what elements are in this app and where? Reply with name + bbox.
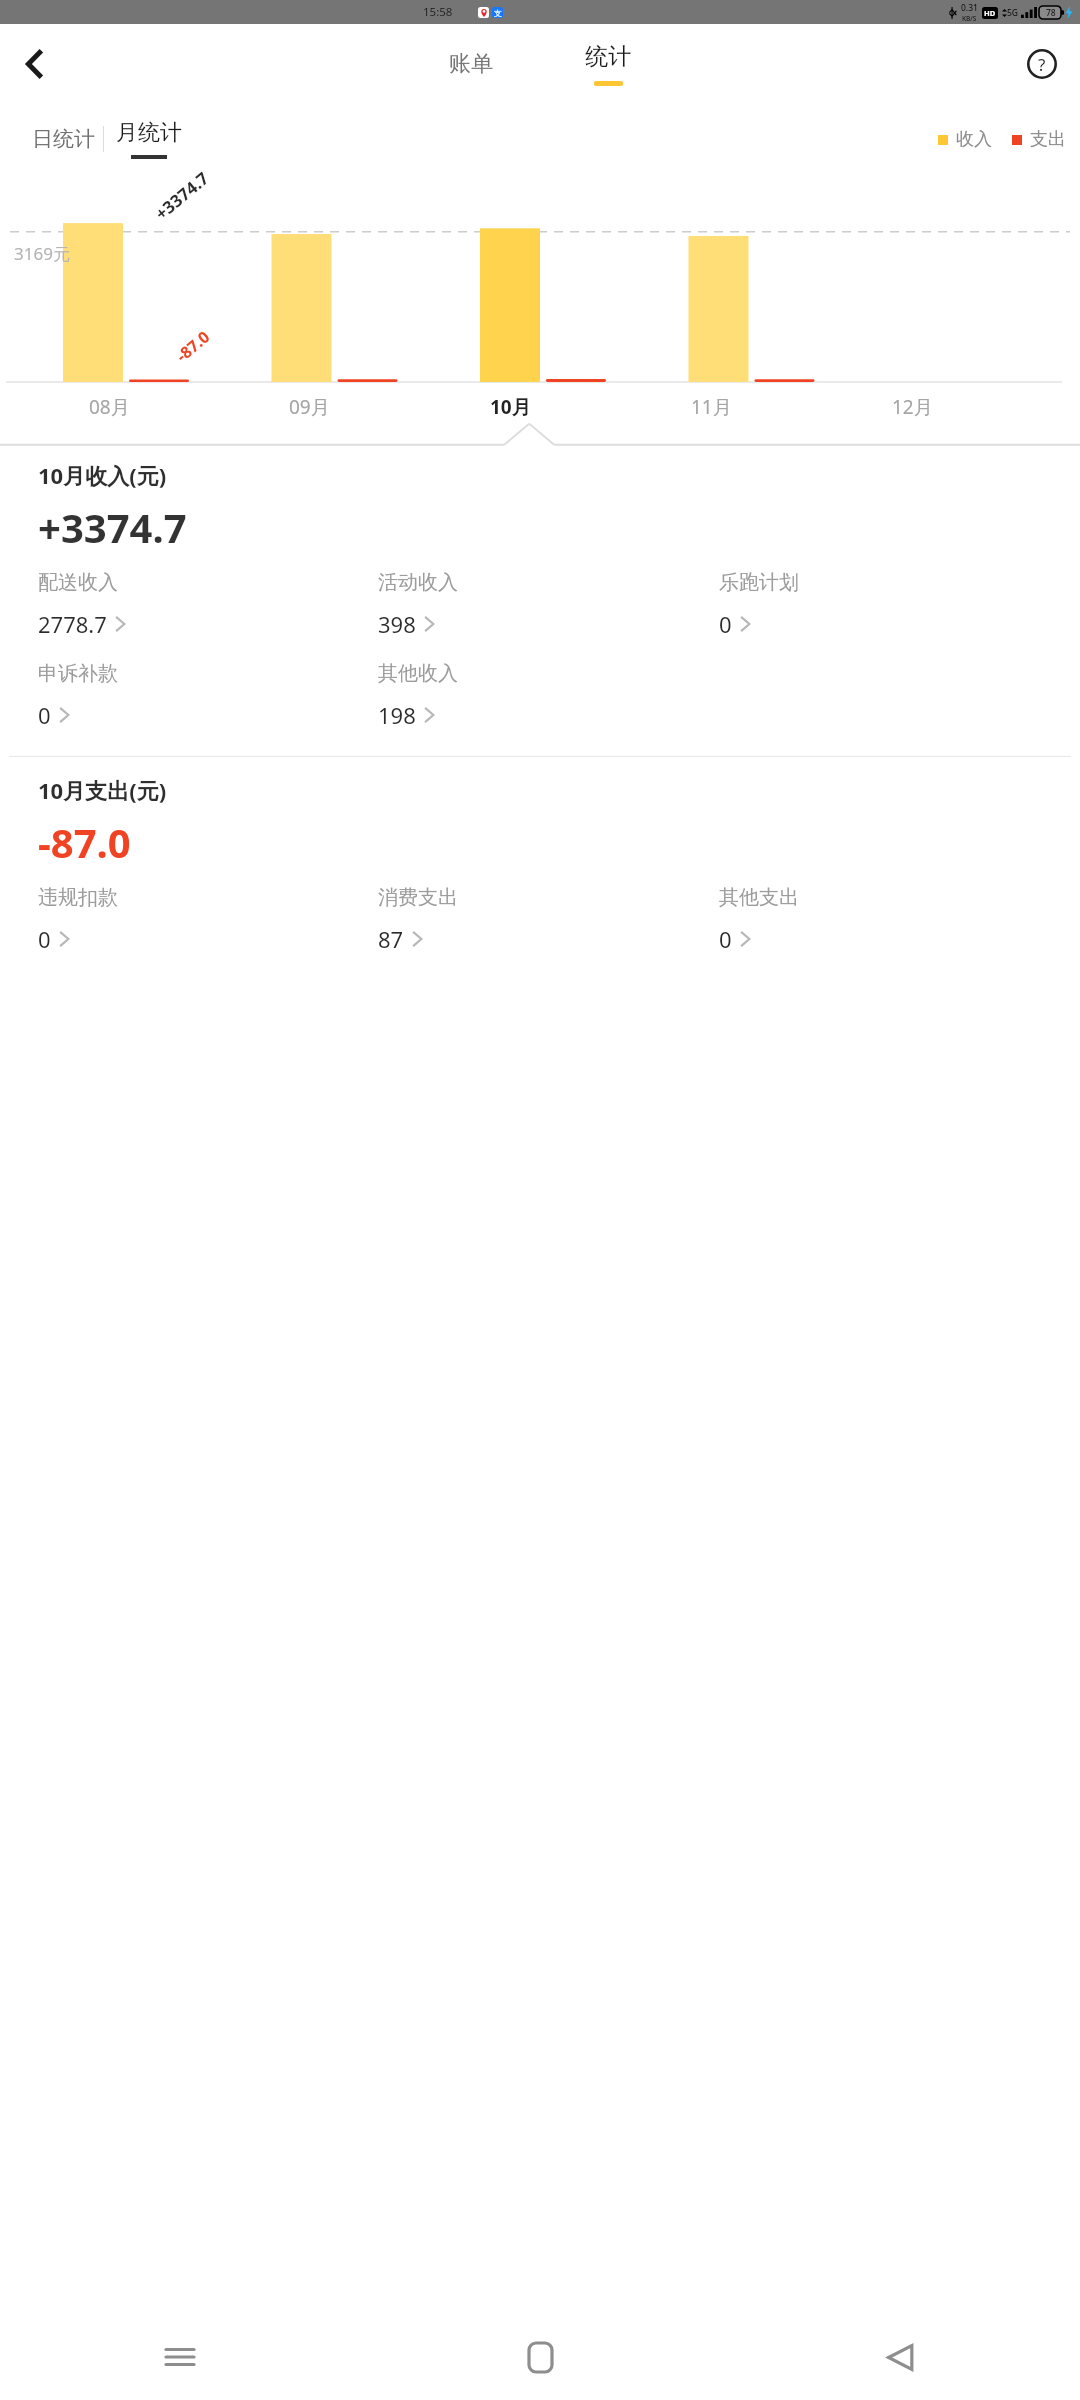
button[interactable]: 乐跑计划 xyxy=(719,570,799,639)
button[interactable]: Back xyxy=(10,40,58,88)
staticText: KB/S xyxy=(962,14,977,23)
button[interactable]: Recents xyxy=(0,2314,360,2400)
staticText: 其他支出 xyxy=(719,885,799,910)
staticText: 0.31 xyxy=(961,2,978,14)
staticText: 0 xyxy=(38,700,51,730)
staticText: 5G xyxy=(1007,7,1019,19)
staticText: 统计 xyxy=(585,42,631,71)
staticText: 78 xyxy=(1046,7,1056,19)
staticText: 活动收入 xyxy=(378,570,458,595)
button[interactable]: Back xyxy=(720,2314,1080,2400)
staticText: 违规扣款 xyxy=(38,885,118,910)
button[interactable]: Help xyxy=(1018,40,1066,88)
staticText: 配送收入 xyxy=(38,570,118,595)
button[interactable]: 申诉补款 xyxy=(38,661,118,730)
button[interactable]: 日统计 xyxy=(24,120,103,158)
button[interactable]: Home xyxy=(360,2314,720,2400)
staticText: 198 xyxy=(378,700,416,730)
staticText: 12月 xyxy=(892,394,933,420)
staticText: HD xyxy=(984,8,996,18)
staticText: +3374.7 xyxy=(150,166,214,225)
staticText: 09月 xyxy=(289,394,330,420)
staticText: 11月 xyxy=(691,394,732,420)
staticText: 支出 xyxy=(1030,128,1066,151)
staticText: 申诉补款 xyxy=(38,661,118,686)
staticText: 月统计 xyxy=(116,119,182,147)
button[interactable]: 配送收入 xyxy=(38,570,126,639)
button[interactable]: 活动收入 xyxy=(378,570,458,639)
button[interactable]: 其他收入 xyxy=(378,661,458,730)
staticText: 支 xyxy=(494,8,502,18)
staticText: 398 xyxy=(378,609,416,639)
staticText: 10月收入(元) xyxy=(38,460,167,490)
staticText: 收入 xyxy=(956,128,992,151)
staticText: 2778.7 xyxy=(38,609,107,639)
staticText: 0 xyxy=(719,924,732,954)
button[interactable]: 其他支出 xyxy=(719,885,799,954)
staticText: ? xyxy=(1038,53,1046,76)
staticText: 0 xyxy=(38,924,51,954)
staticText: 消费支出 xyxy=(378,885,458,910)
button[interactable]: 违规扣款 xyxy=(38,885,118,954)
staticText: 日统计 xyxy=(32,126,95,152)
staticText: 乐跑计划 xyxy=(719,570,799,595)
staticText: 10月支出(元) xyxy=(38,775,167,805)
staticText: 其他收入 xyxy=(378,661,458,686)
button[interactable]: 消费支出 xyxy=(378,885,458,954)
staticText: 08月 xyxy=(89,394,130,420)
button[interactable]: 月统计 xyxy=(104,119,190,159)
staticText: -87.0 xyxy=(171,325,215,367)
staticText: 账单 xyxy=(449,50,493,78)
staticText: 10月 xyxy=(490,394,531,420)
staticText: 3169元 xyxy=(14,242,70,265)
staticText: 15:58 xyxy=(423,4,453,20)
staticText: -87.0 xyxy=(38,815,131,869)
button[interactable]: 统计 xyxy=(563,42,653,86)
staticText: 0 xyxy=(719,609,732,639)
staticText: 87 xyxy=(378,924,404,954)
staticText: +3374.7 xyxy=(38,500,187,554)
button[interactable]: 账单 xyxy=(427,42,515,86)
